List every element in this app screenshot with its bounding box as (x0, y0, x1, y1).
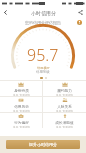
button[interactable]: 提升小时信用分 (6, 140, 80, 149)
staticText: 提升小时信用分 (29, 142, 57, 147)
staticText: 行为偏好 (14, 120, 29, 125)
staticText: 您的信用分评估报告 (25, 20, 61, 25)
staticText: 小时信用分 (31, 10, 56, 16)
staticText: 良好 查看详情 (13, 125, 30, 128)
staticText: 信用极好 (37, 66, 50, 70)
staticText: 良好 查看详情 (13, 109, 30, 112)
staticText: 良好 查看详情 (56, 125, 73, 128)
staticText: 信用历史 (14, 104, 29, 109)
staticText: 履约能力 (57, 88, 72, 93)
staticText: 信用等级 (36, 70, 50, 74)
button[interactable]: 人脉关系 (43, 97, 86, 112)
button[interactable]: 履约能力 (43, 81, 86, 96)
staticText: 人脉关系 (57, 104, 72, 109)
staticText: 成长潜能值 (55, 120, 74, 125)
staticText: 95.7 (27, 44, 59, 66)
button[interactable]: Help (76, 19, 83, 26)
staticText: 身份特质 (14, 88, 29, 93)
staticText: 良好 查看详情 (56, 93, 73, 96)
button[interactable]: Share (75, 7, 86, 18)
button[interactable]: 信用历史 (0, 97, 42, 112)
button[interactable]: 行为偏好 (0, 113, 42, 128)
button[interactable]: 成长潜能值 (43, 113, 86, 128)
button[interactable]: 身份特质 (0, 81, 42, 96)
button[interactable]: Back (0, 7, 11, 18)
staticText: 良好 查看详情 (13, 93, 30, 96)
staticText: 良好 查看详情 (56, 109, 73, 112)
